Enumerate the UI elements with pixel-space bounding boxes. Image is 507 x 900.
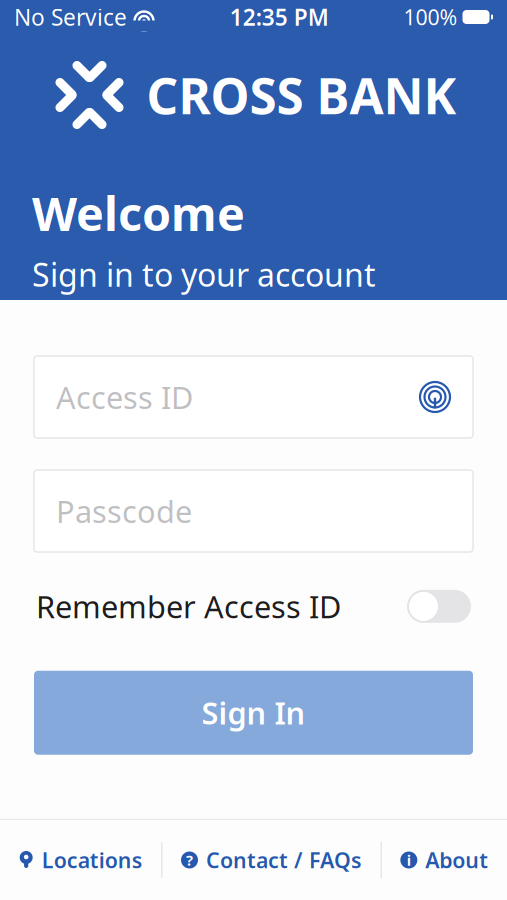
staticText: No Service [14,2,127,32]
staticText: Welcome [32,182,245,244]
staticText: Locations [42,846,143,874]
staticText: Remember Access ID [36,586,341,627]
staticText: Access ID [56,377,193,417]
staticText: ? [186,850,193,870]
button[interactable]: Remember Access ID [407,590,471,623]
staticText: Passcode [56,491,192,531]
staticText: Sign in to your account [32,253,376,295]
button[interactable]: Locations [9,838,153,882]
staticText: i [407,850,411,870]
staticText: CROSS BANK [146,62,456,128]
button[interactable]: i [390,838,498,882]
staticText: 12:35 PM [230,2,329,32]
button[interactable]: Sign In [34,671,473,755]
staticText: Contact / FAQs [206,846,362,874]
staticText: 100% [403,3,457,31]
staticText: About [425,846,488,874]
staticText: Sign In [201,692,305,733]
button[interactable]: Sign in with Touch ID [419,380,451,414]
button[interactable]: ? [171,838,372,882]
